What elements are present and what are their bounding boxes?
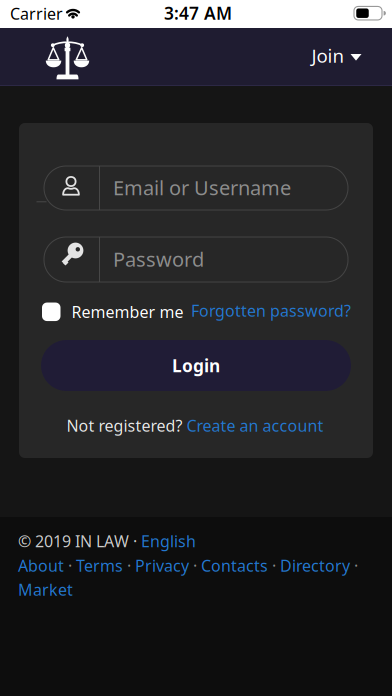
staticText: Forgotten password?: [191, 300, 351, 321]
staticText: ·: [189, 555, 201, 576]
button[interactable]: Login: [41, 340, 351, 391]
staticText: ·: [123, 555, 135, 576]
button[interactable]: Market: [18, 579, 73, 600]
button[interactable]: Create an account: [186, 415, 323, 436]
button[interactable]: Remember me: [42, 301, 262, 322]
staticText: Contacts: [201, 555, 268, 576]
staticText: About: [18, 555, 64, 576]
staticText: Join: [311, 43, 344, 68]
staticText: Directory: [280, 555, 350, 576]
button[interactable]: Join: [241, 43, 361, 68]
staticText: Remember me: [71, 301, 183, 322]
staticText: ·: [64, 555, 76, 576]
staticText: Privacy: [135, 555, 189, 576]
staticText: Not registered?: [66, 415, 186, 436]
staticText: © 2019 IN LAW ·: [18, 530, 141, 552]
staticText: Carrier: [10, 3, 63, 24]
button[interactable]: About: [18, 555, 64, 576]
button[interactable]: Directory: [280, 555, 350, 576]
staticText: Market: [18, 579, 73, 600]
staticText: Terms: [76, 555, 123, 576]
button[interactable]: English: [141, 530, 196, 552]
staticText: ·: [268, 555, 280, 576]
staticText: 3:47 AM: [164, 1, 232, 24]
button[interactable]: Terms: [76, 555, 123, 576]
staticText: Password: [113, 246, 204, 272]
button[interactable]: Privacy: [135, 555, 189, 576]
staticText: Login: [172, 354, 220, 377]
button[interactable]: Contacts: [201, 555, 268, 576]
staticText: Email or Username: [113, 174, 291, 201]
button[interactable]: [39, 31, 95, 83]
button[interactable]: Password: [44, 237, 348, 282]
staticText: ·: [350, 555, 358, 576]
button[interactable]: Email or Username: [44, 166, 348, 210]
button[interactable]: Forgotten password?: [111, 300, 351, 321]
staticText: English: [141, 530, 196, 552]
staticText: Create an account: [186, 415, 323, 436]
